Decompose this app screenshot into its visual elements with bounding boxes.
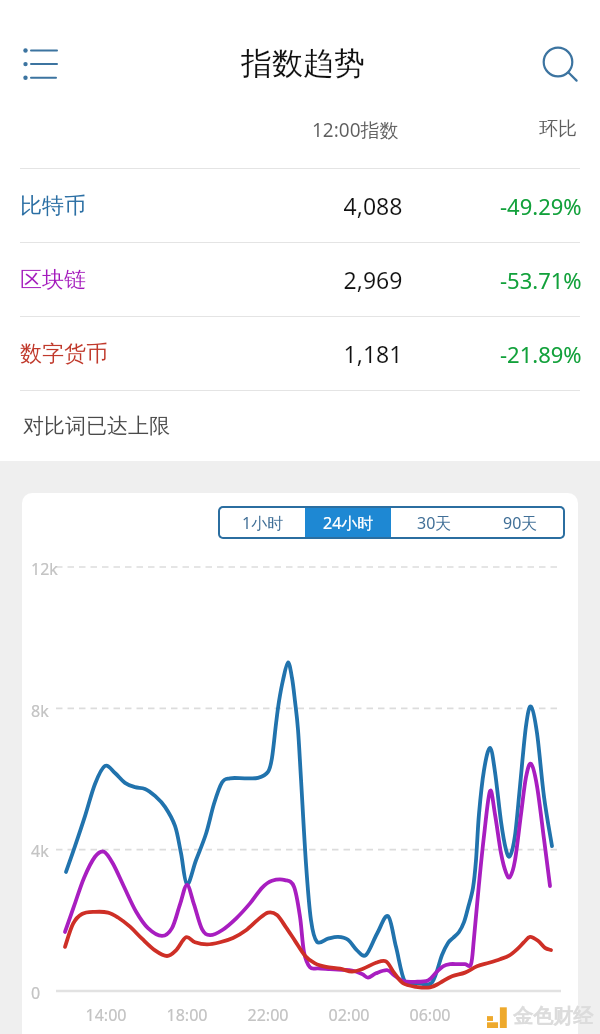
button[interactable]: 数字货币: [0, 317, 600, 390]
staticText: 4,088: [323, 190, 423, 221]
staticText: 90天: [503, 512, 538, 534]
staticText: 06:00: [400, 1004, 460, 1026]
staticText: 指数趋势: [241, 44, 365, 83]
staticText: 金色财经: [513, 1004, 593, 1029]
button[interactable]: Menu: [8, 34, 68, 94]
staticText: 18:00: [157, 1004, 217, 1026]
button[interactable]: 比特币: [0, 169, 600, 242]
button[interactable]: 24小时: [305, 508, 391, 537]
staticText: -53.71%: [500, 265, 582, 295]
button[interactable]: 区块链: [0, 243, 600, 316]
staticText: 对比词已达上限: [23, 413, 170, 439]
staticText: 24小时: [323, 512, 374, 534]
staticText: 8k: [31, 700, 49, 722]
staticText: 区块链: [20, 266, 86, 294]
button[interactable]: Search: [530, 32, 590, 92]
staticText: -49.29%: [500, 191, 582, 221]
staticText: -21.89%: [500, 339, 582, 369]
staticText: 14:00: [76, 1004, 136, 1026]
staticText: 比特币: [20, 192, 86, 220]
staticText: 4k: [31, 840, 49, 862]
staticText: 02:00: [319, 1004, 379, 1026]
staticText: 12:00指数: [312, 117, 399, 143]
staticText: 22:00: [238, 1004, 298, 1026]
staticText: 0: [31, 982, 41, 1004]
staticText: 1小时: [242, 512, 284, 534]
staticText: 12k: [31, 558, 58, 580]
button[interactable]: 30天: [391, 508, 477, 537]
staticText: 环比: [539, 117, 577, 141]
button[interactable]: 1小时: [220, 508, 305, 537]
button[interactable]: 90天: [477, 508, 563, 537]
staticText: 数字货币: [20, 340, 108, 368]
staticText: 30天: [417, 512, 452, 534]
staticText: 2,969: [323, 264, 423, 295]
staticText: 1,181: [323, 338, 423, 369]
